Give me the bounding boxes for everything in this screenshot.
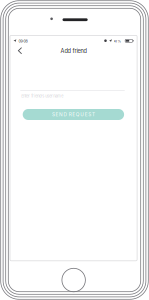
staticText: 09:08 [19,39,28,43]
staticText: 41% [114,39,122,43]
button[interactable]: Back [15,45,26,57]
staticText: SEND REQUEST [52,112,95,117]
staticText: Add friend [60,48,86,54]
button[interactable]: SEND REQUEST [23,109,124,120]
staticText: Enter friend's username [21,94,63,98]
